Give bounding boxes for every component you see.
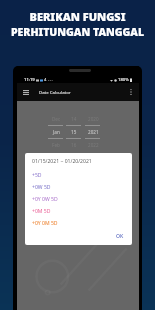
button[interactable]: More options xyxy=(125,86,137,98)
staticText: +5D xyxy=(32,172,42,179)
staticText: +0Y 0W 5D xyxy=(32,196,58,203)
staticText: 14 xyxy=(71,116,77,122)
staticText: 15 xyxy=(71,129,77,135)
staticText: Date Calculator xyxy=(39,89,71,95)
staticText: 180% xyxy=(118,77,129,83)
staticText: OK xyxy=(116,233,124,240)
staticText: Feb xyxy=(52,142,60,148)
staticText: 2021 xyxy=(88,129,99,135)
staticText: +0W 5D xyxy=(32,184,51,191)
staticText: 4 xyxy=(44,77,47,83)
staticText: PERHITUNGAN TANGGAL xyxy=(0,25,155,39)
staticText: +0Y 0M 5D xyxy=(32,220,58,227)
button[interactable]: OK xyxy=(112,229,128,244)
button[interactable]: Open navigation menu xyxy=(20,86,32,98)
staticText: Dec xyxy=(52,116,61,122)
staticText: BERIKAN FUNGSI xyxy=(0,9,155,24)
staticText: 16 xyxy=(71,142,77,148)
staticText: 01/15/2021 ~ 01/20/2021 xyxy=(32,158,92,165)
staticText: 11:19 xyxy=(24,77,35,83)
staticText: 2020 xyxy=(88,116,99,122)
staticText: Jan xyxy=(53,129,60,135)
staticText: 2022 xyxy=(88,142,99,148)
staticText: +0M 5D xyxy=(32,208,51,215)
